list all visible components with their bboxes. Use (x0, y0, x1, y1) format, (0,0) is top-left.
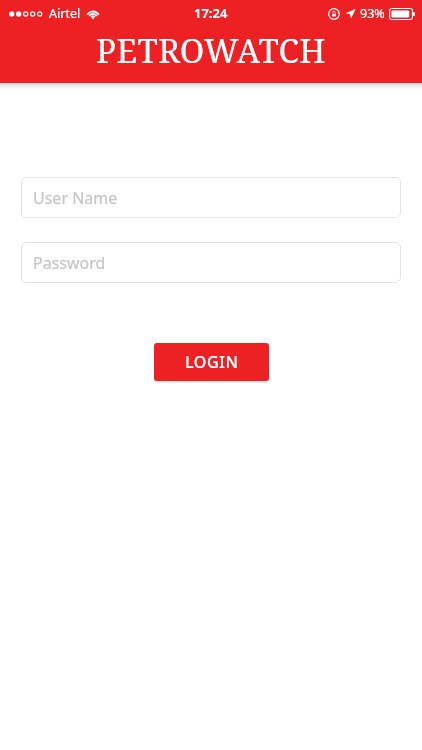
staticText: Airtel (49, 5, 81, 22)
staticText: 93% (360, 5, 385, 22)
button[interactable]: User Name (21, 177, 401, 218)
staticText: LOGIN (185, 351, 239, 373)
staticText: User Name (33, 187, 118, 209)
staticText: Password (33, 252, 106, 274)
staticText: PETROWATCH (0, 28, 422, 73)
button[interactable]: Password (21, 242, 401, 283)
staticText: 17:24 (194, 4, 228, 22)
button[interactable]: LOGIN (154, 343, 269, 381)
